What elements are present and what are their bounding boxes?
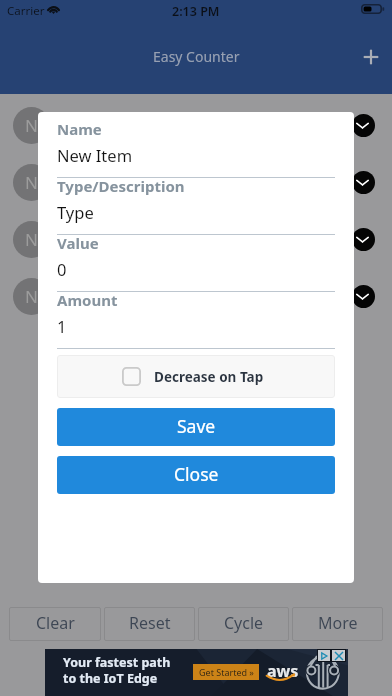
staticText: More bbox=[318, 612, 358, 634]
button[interactable]: Cycle bbox=[198, 607, 289, 641]
other: Expand bbox=[352, 114, 375, 137]
button[interactable]: More bbox=[292, 607, 383, 641]
staticText: Clear bbox=[36, 612, 75, 634]
staticText: Amount bbox=[57, 290, 118, 310]
staticText: Decrease on Tap bbox=[154, 368, 264, 386]
button[interactable]: Clear bbox=[9, 607, 101, 641]
button[interactable]: Reset bbox=[104, 607, 195, 641]
staticText: 0 bbox=[57, 258, 67, 280]
staticText: New Item bbox=[57, 144, 133, 166]
button[interactable]: N bbox=[0, 154, 392, 211]
staticText: Value bbox=[57, 233, 99, 253]
button[interactable]: Ad info bbox=[317, 649, 331, 662]
button[interactable]: Get Started » bbox=[193, 664, 259, 680]
staticText: Save bbox=[177, 414, 216, 438]
other: Expand bbox=[352, 228, 375, 251]
staticText: N bbox=[25, 114, 38, 137]
button[interactable]: Close bbox=[57, 456, 335, 494]
staticText: 2:13 PM bbox=[172, 3, 220, 20]
staticText: Reset bbox=[129, 612, 171, 634]
staticText: aws bbox=[267, 660, 299, 682]
button[interactable]: Add bbox=[347, 33, 392, 81]
staticText: Get Started » bbox=[199, 666, 254, 678]
other: Expand bbox=[352, 285, 375, 308]
button[interactable]: Decrease on Tap bbox=[57, 355, 335, 398]
button[interactable]: N bbox=[0, 97, 392, 154]
staticText: Close bbox=[174, 462, 219, 486]
button[interactable]: Save bbox=[57, 408, 335, 446]
staticText: 1 bbox=[57, 315, 67, 337]
button[interactable]: N bbox=[0, 211, 392, 268]
staticText: Carrier bbox=[7, 3, 45, 19]
staticText: to the IoT Edge bbox=[63, 670, 158, 687]
button[interactable]: Your fastest path bbox=[45, 649, 348, 696]
button[interactable]: N bbox=[0, 268, 392, 325]
staticText: Type/Description bbox=[57, 176, 185, 196]
staticText: N bbox=[25, 228, 38, 251]
staticText: Easy Counter bbox=[153, 47, 240, 66]
staticText: Cycle bbox=[224, 612, 264, 634]
other: Expand bbox=[352, 171, 375, 194]
button[interactable]: Close ad bbox=[331, 649, 346, 662]
staticText: N bbox=[25, 171, 38, 194]
staticText: Type bbox=[57, 201, 94, 223]
staticText: Name bbox=[57, 119, 102, 139]
staticText: Your fastest path bbox=[63, 654, 171, 671]
staticText: N bbox=[25, 285, 38, 308]
